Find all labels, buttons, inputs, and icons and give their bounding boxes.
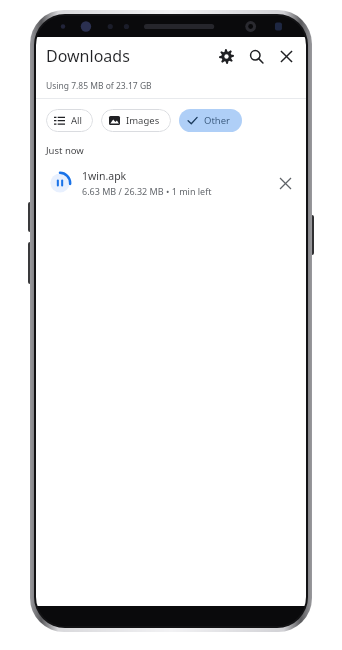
button[interactable]: Images — [101, 109, 171, 132]
button[interactable]: Other — [179, 109, 242, 132]
button[interactable]: Settings — [212, 42, 240, 70]
staticText: All — [71, 114, 82, 127]
staticText: 1win.apk — [82, 169, 127, 183]
staticText: Other — [204, 114, 231, 127]
staticText: 6.63 MB / 26.32 MB • 1 min left — [82, 185, 212, 197]
staticText: Images — [126, 114, 160, 127]
staticText: Downloads — [46, 45, 130, 67]
button[interactable]: Cancel download — [272, 170, 298, 196]
staticText: Just now — [46, 144, 84, 157]
button[interactable]: Close — [272, 42, 300, 70]
button[interactable]: 1win.apk — [36, 161, 306, 205]
button[interactable]: Search — [242, 42, 270, 70]
staticText: Using 7.85 MB of 23.17 GB — [46, 80, 152, 92]
button[interactable]: All — [46, 109, 93, 132]
